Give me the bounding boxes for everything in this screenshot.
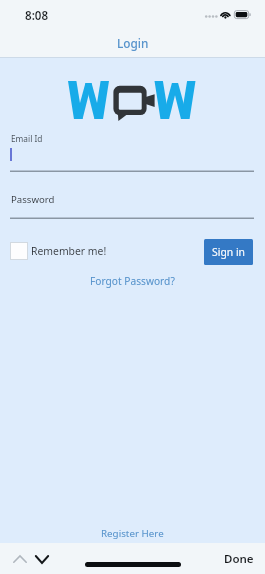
staticText: Done (224, 551, 254, 567)
button[interactable]: Login (100, 32, 165, 53)
button[interactable]: Forgot Password? (86, 272, 179, 290)
staticText: Password (11, 193, 55, 206)
staticText: Sign in (212, 245, 246, 259)
staticText: Email Id (11, 133, 43, 144)
staticText: Login (117, 35, 149, 51)
button[interactable]: Done (221, 548, 257, 570)
button[interactable]: Next field (30, 547, 54, 571)
staticText: 8:08 (25, 8, 49, 24)
staticText: Remember me! (31, 244, 107, 258)
staticText: Forgot Password? (90, 274, 175, 288)
button[interactable]: Sign in (204, 239, 253, 265)
staticText: Register Here (101, 527, 164, 540)
button[interactable]: Email Id (10, 130, 254, 172)
button[interactable]: Remember me! (10, 240, 107, 262)
button[interactable]: Register Here (97, 525, 168, 542)
button[interactable]: Password (10, 186, 254, 219)
button[interactable]: Previous field (8, 547, 32, 571)
